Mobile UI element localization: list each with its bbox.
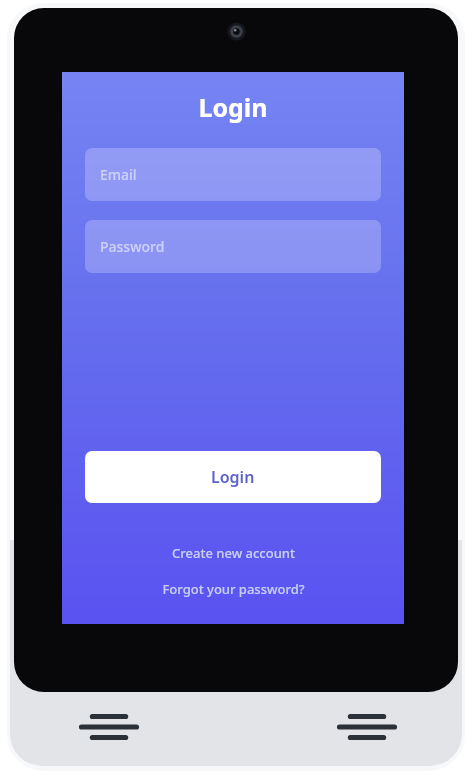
staticText: Email (100, 165, 137, 184)
button[interactable]: Login (85, 451, 381, 503)
other: Speaker (78, 711, 140, 743)
staticText: Password (100, 237, 165, 256)
staticText: Login (211, 466, 255, 488)
button[interactable]: Forgot your password? (115, 576, 351, 602)
button[interactable]: Password (85, 220, 381, 273)
button[interactable]: Create new account (115, 540, 351, 566)
button[interactable]: Email (85, 148, 381, 201)
staticText: Login (62, 90, 404, 124)
staticText: Forgot your password? (162, 580, 305, 598)
staticText: Create new account (172, 544, 295, 562)
other: Speaker (336, 711, 398, 743)
